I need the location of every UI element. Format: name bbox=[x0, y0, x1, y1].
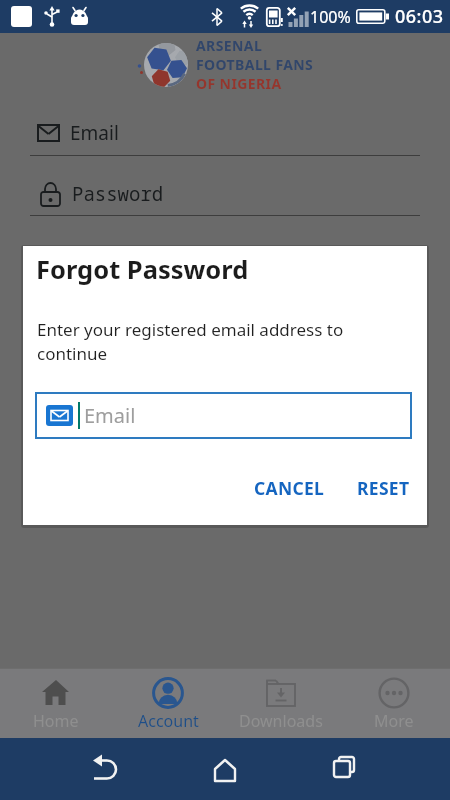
button[interactable] bbox=[195, 738, 255, 800]
staticText: Email bbox=[70, 120, 119, 146]
staticText: RESET bbox=[357, 476, 410, 500]
button[interactable]: Home bbox=[0, 669, 112, 738]
staticText: 100% bbox=[310, 6, 351, 28]
staticText: OF NIGERIA bbox=[196, 74, 282, 93]
button[interactable]: Email bbox=[30, 114, 420, 152]
button[interactable]: Password bbox=[30, 175, 420, 213]
button[interactable]: Downloads bbox=[224, 669, 337, 738]
staticText: Account bbox=[138, 710, 199, 732]
button[interactable] bbox=[76, 738, 136, 800]
button[interactable] bbox=[313, 738, 373, 800]
button[interactable]: CANCEL bbox=[254, 476, 325, 500]
staticText: Home bbox=[33, 710, 79, 732]
staticText: More bbox=[374, 710, 414, 732]
staticText: CANCEL bbox=[254, 476, 325, 500]
staticText: Downloads bbox=[239, 710, 323, 732]
staticText: Password bbox=[72, 181, 164, 207]
staticText: Email bbox=[84, 402, 136, 429]
staticText: FOOTBALL FANS bbox=[196, 55, 314, 74]
staticText: Forgot Password bbox=[36, 252, 249, 287]
staticText: ARSENAL bbox=[196, 36, 263, 55]
button[interactable]: Account bbox=[112, 669, 224, 738]
button[interactable]: More bbox=[337, 669, 450, 738]
staticText: Enter your registered email address to c… bbox=[37, 318, 344, 365]
button[interactable]: Email bbox=[36, 393, 411, 438]
button[interactable]: RESET bbox=[357, 476, 410, 500]
staticText: 06:03 bbox=[395, 4, 444, 29]
